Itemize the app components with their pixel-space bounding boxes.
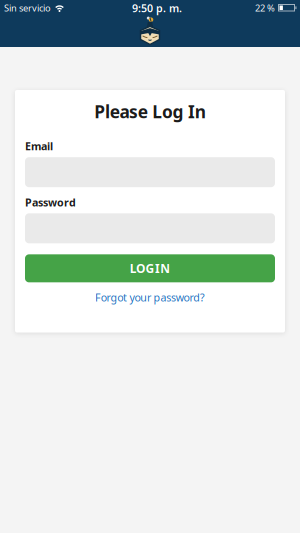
- staticText: Password: [25, 195, 76, 209]
- button[interactable]: Forgot your password?: [95, 290, 205, 304]
- button[interactable]: LOGIN: [25, 254, 275, 282]
- staticText: Forgot your password?: [95, 290, 205, 304]
- staticText: LOGIN: [130, 260, 170, 276]
- staticText: Email: [25, 139, 53, 153]
- staticText: Please Log In: [94, 100, 206, 123]
- staticText: Sin servicio: [4, 2, 51, 14]
- staticText: 9:50 p. m.: [132, 1, 182, 15]
- staticText: 22 %: [255, 2, 275, 14]
